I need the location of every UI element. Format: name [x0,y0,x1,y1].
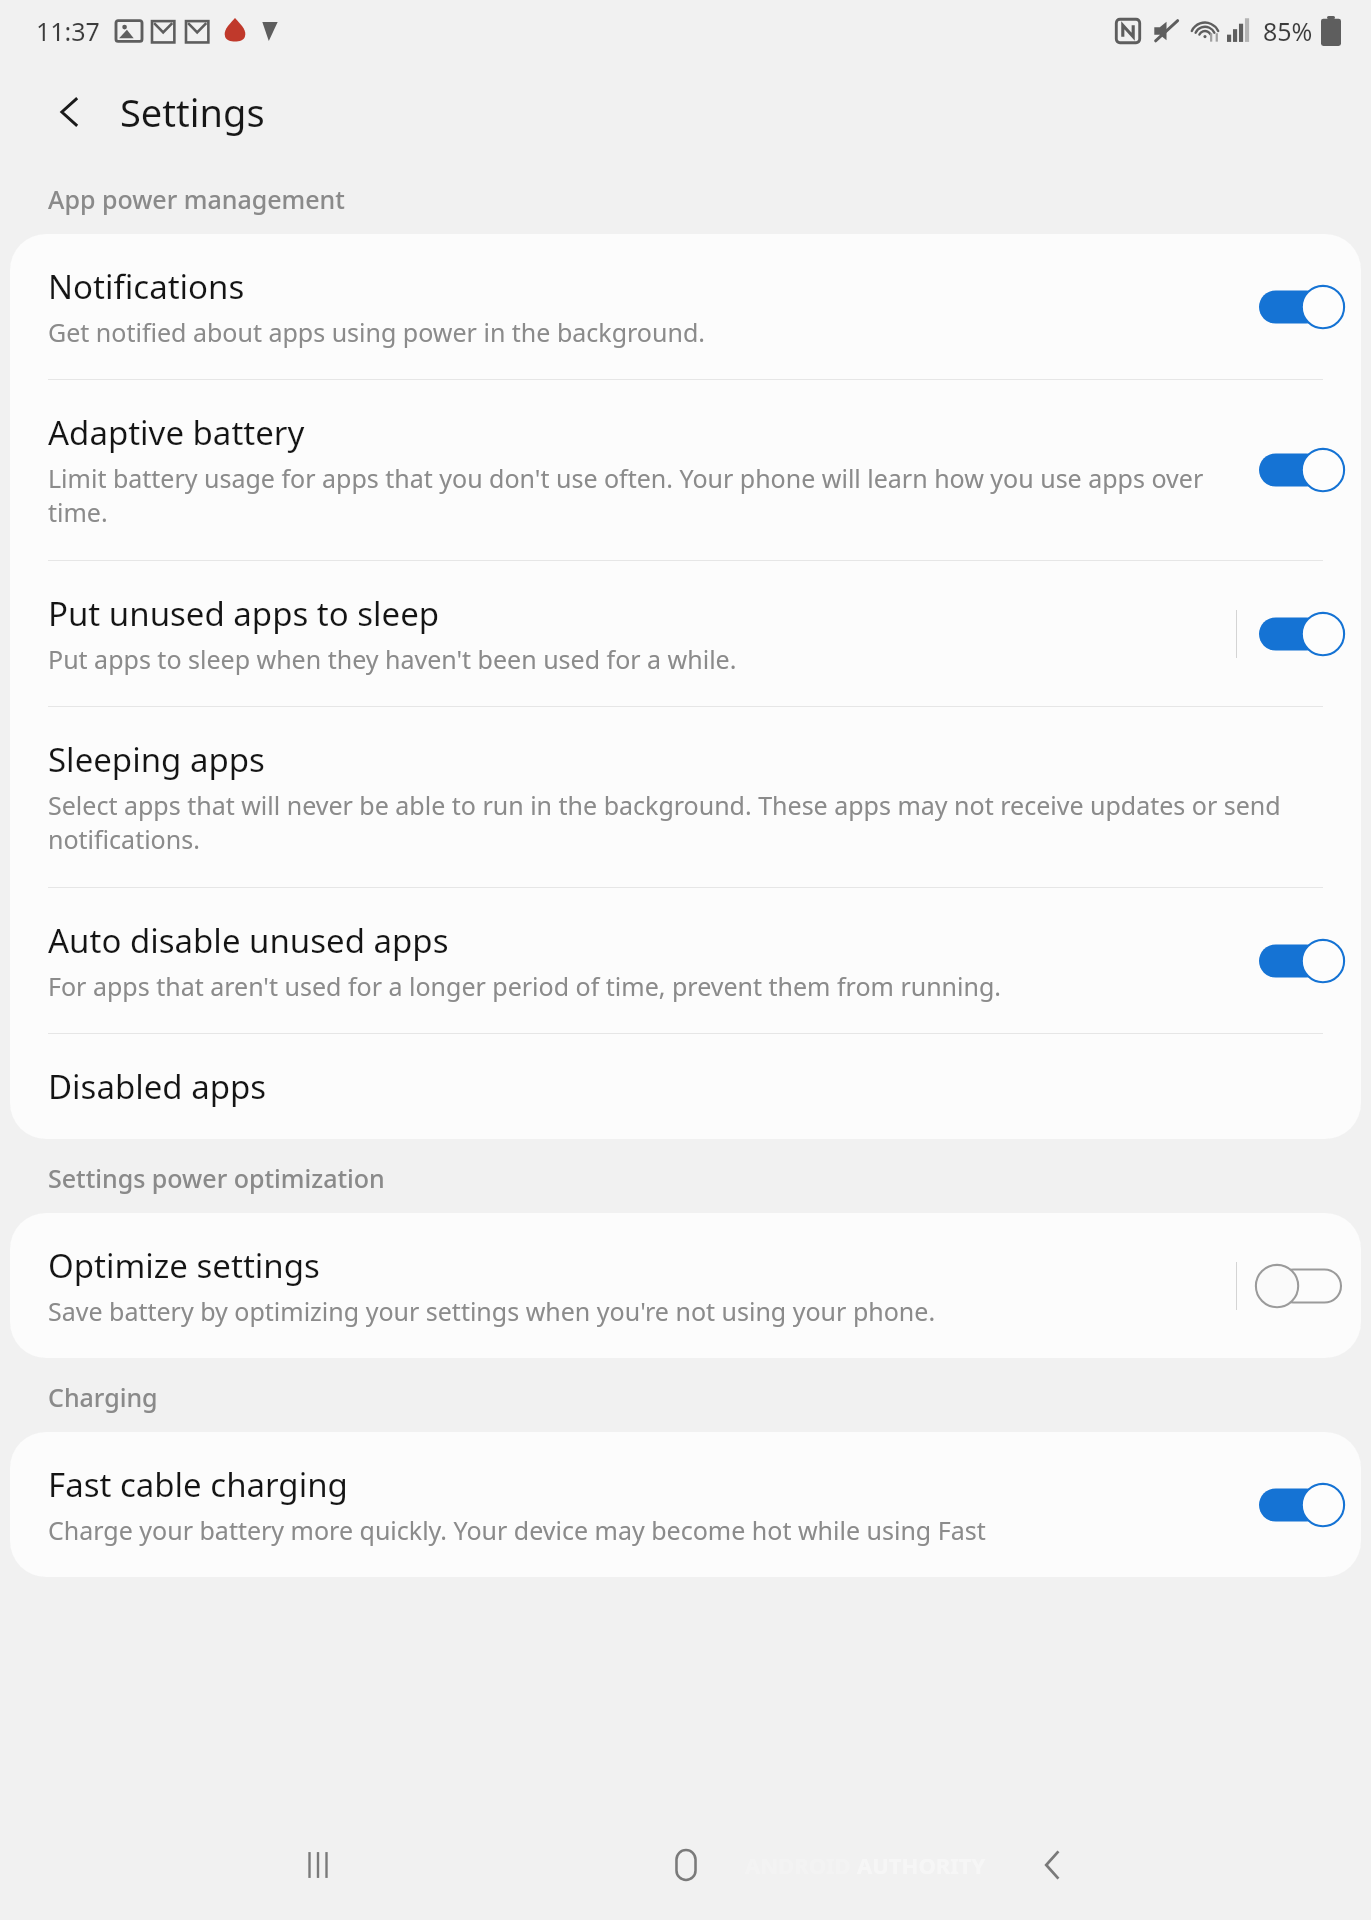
button[interactable]: Back [42,84,98,140]
staticText: Save battery by optimizing your settings… [48,1294,936,1328]
button[interactable]: Recents [268,1815,368,1915]
button[interactable]: On [1259,284,1341,330]
button[interactable]: On [1259,611,1341,657]
button[interactable]: Fast cable charging [10,1432,1361,1577]
staticText: Fast cable charging [48,1462,348,1507]
staticText: Optimize settings [48,1243,320,1288]
staticText: For apps that aren't used for a longer p… [48,969,1002,1003]
button[interactable]: Off [1259,1263,1341,1309]
button[interactable]: Auto disable unused apps [10,888,1361,1034]
button[interactable]: Optimize settings [10,1213,1361,1358]
staticText: App power management [48,182,345,216]
staticText: Sleeping apps [48,737,265,782]
button[interactable]: Back [1003,1815,1103,1915]
staticText: Charging [48,1380,158,1414]
staticText: Settings power optimization [48,1161,385,1195]
staticText: Select apps that will never be able to r… [48,788,1325,857]
button[interactable]: Adaptive battery [10,380,1361,561]
staticText: Notifications [48,264,245,309]
staticText: Get notified about apps using power in t… [48,315,705,349]
staticText: Put apps to sleep when they haven't been… [48,642,737,676]
staticText: Adaptive battery [48,410,305,455]
staticText: Auto disable unused apps [48,918,449,963]
button[interactable]: On [1259,447,1341,493]
staticText: Disabled apps [48,1064,267,1109]
button[interactable]: Home [636,1815,736,1915]
staticText: 11:37 [36,14,100,48]
button[interactable]: On [1259,938,1341,984]
staticText: Put unused apps to sleep [48,591,440,636]
button[interactable]: Notifications [10,234,1361,380]
button[interactable]: Disabled apps [10,1034,1361,1139]
staticText: Limit battery usage for apps that you do… [48,461,1243,530]
staticText: Settings [120,86,265,138]
button[interactable]: On [1259,1482,1341,1528]
button[interactable]: Sleeping apps [10,707,1361,888]
staticText: Charge your battery more quickly. Your d… [48,1513,986,1547]
button[interactable]: Put unused apps to sleep [10,561,1361,707]
staticText: 85% [1263,14,1313,48]
